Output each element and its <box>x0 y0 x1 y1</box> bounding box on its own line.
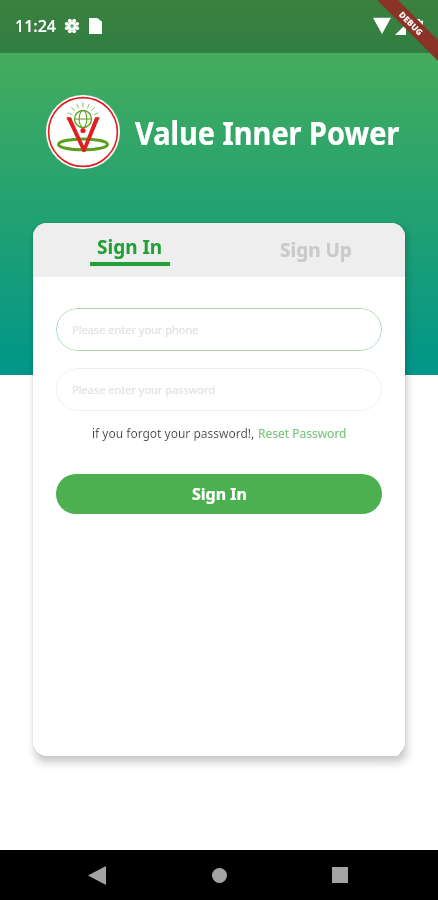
button[interactable]: Reset Password <box>258 425 347 441</box>
button[interactable]: Sign In <box>33 223 219 277</box>
staticText: DEBUG <box>397 9 426 38</box>
staticText: 11:24 <box>15 15 56 37</box>
staticText: Please enter your phone <box>72 322 199 337</box>
button[interactable]: Please enter your phone <box>56 308 382 351</box>
staticText: Please enter your password <box>72 382 216 397</box>
staticText: if you forgot your password!, <box>92 425 255 441</box>
button[interactable]: Sign In <box>56 474 382 514</box>
staticText: Sign Up <box>280 237 352 263</box>
button[interactable]: Please enter your password <box>56 368 382 411</box>
button[interactable]: Back <box>77 855 117 895</box>
staticText: Sign In <box>97 234 163 260</box>
staticText: Sign In <box>192 483 247 505</box>
button[interactable]: Home <box>199 855 239 895</box>
button[interactable]: Sign Up <box>219 223 405 277</box>
staticText: Value Inner Power <box>135 110 400 155</box>
staticText: Reset Password <box>258 425 347 441</box>
button[interactable]: Recent apps <box>320 855 360 895</box>
